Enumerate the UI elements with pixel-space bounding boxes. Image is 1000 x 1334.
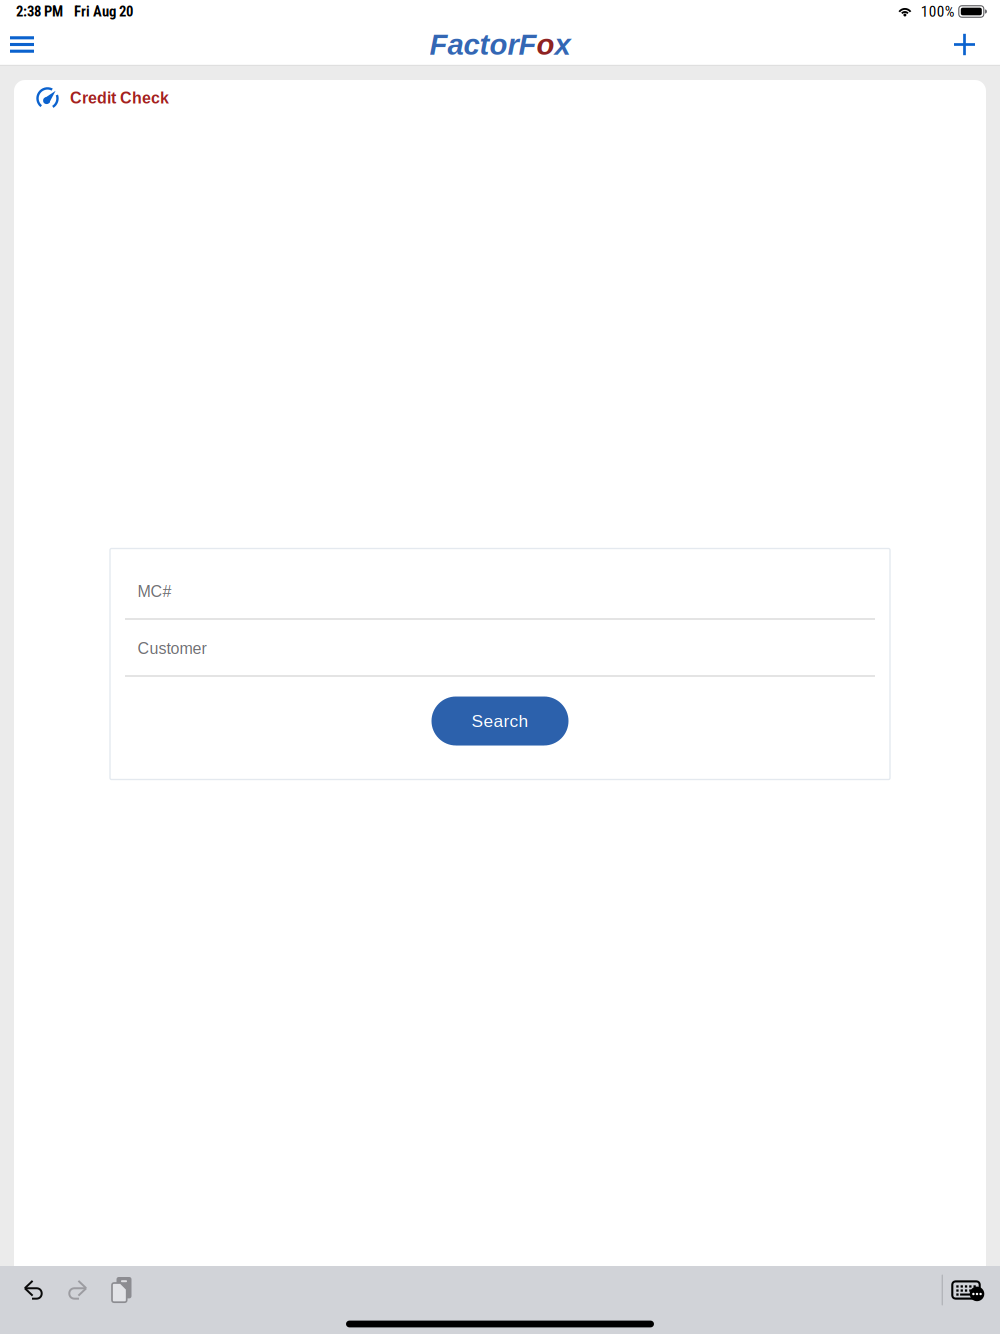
staticText: Search: [471, 711, 528, 731]
staticText: Factor: [429, 28, 518, 61]
button[interactable]: Undo: [18, 1272, 49, 1308]
staticText: x: [554, 28, 570, 61]
staticText: F: [518, 28, 536, 61]
staticText: Credit Check: [70, 89, 169, 107]
button[interactable]: Menu: [0, 26, 48, 63]
staticText: 100%: [921, 2, 955, 20]
staticText: Customer: [137, 640, 206, 657]
button[interactable]: Redo: [62, 1272, 93, 1308]
staticText: MC#: [137, 583, 171, 600]
button[interactable]: Keyboard options: [945, 1273, 987, 1307]
staticText: o: [536, 28, 554, 61]
button[interactable]: Add: [940, 24, 1000, 65]
staticText: 2:38 PM: [16, 3, 63, 20]
button[interactable]: Search: [431, 696, 568, 745]
staticText: Fri Aug 20: [74, 3, 133, 20]
button[interactable]: Paste: [106, 1269, 137, 1311]
